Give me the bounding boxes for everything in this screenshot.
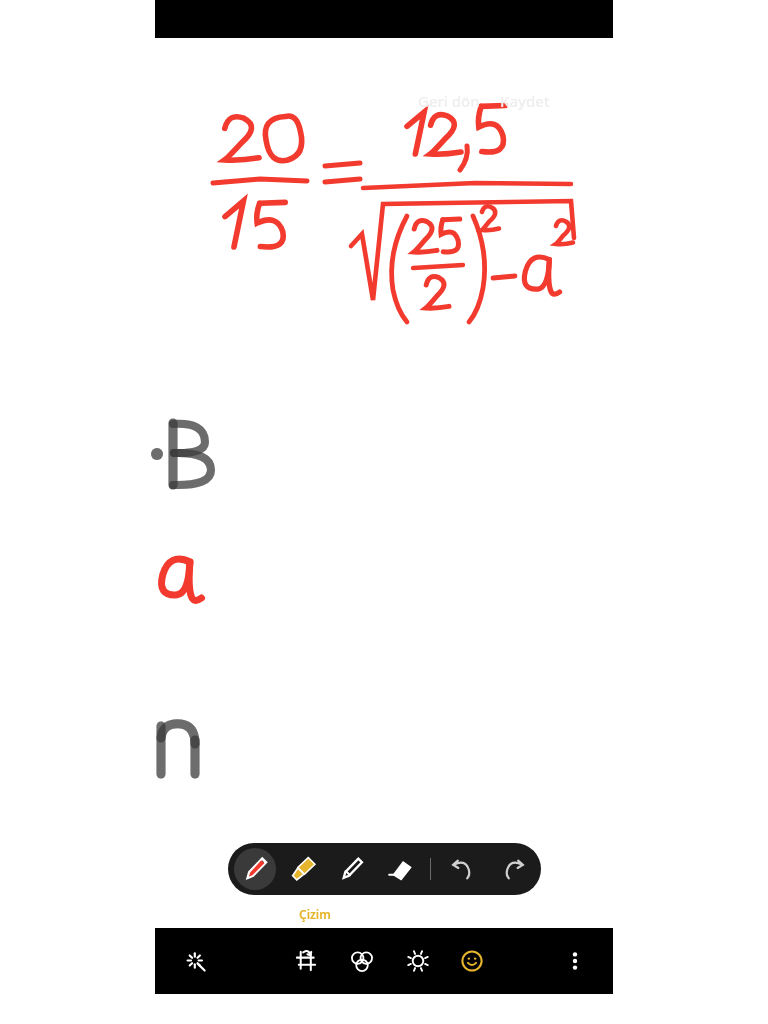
button[interactable]: Highlighter [282, 848, 324, 890]
button[interactable]: Redo [493, 848, 535, 890]
button[interactable]: Undo [441, 848, 483, 890]
button[interactable]: Stickers [453, 942, 491, 980]
staticText: Geri dön [418, 91, 480, 111]
staticText: Çizim [299, 906, 331, 922]
button[interactable]: Adjust brightness [399, 942, 437, 980]
button[interactable]: Crop [287, 942, 325, 980]
staticText: Kaydet [500, 91, 550, 111]
button[interactable]: Pencil [330, 848, 372, 890]
button[interactable]: Pen [234, 848, 276, 890]
button[interactable]: Auto enhance [181, 946, 211, 976]
button[interactable]: More options [559, 945, 591, 977]
button[interactable]: Eraser [378, 848, 420, 890]
button[interactable]: Filters [343, 942, 381, 980]
